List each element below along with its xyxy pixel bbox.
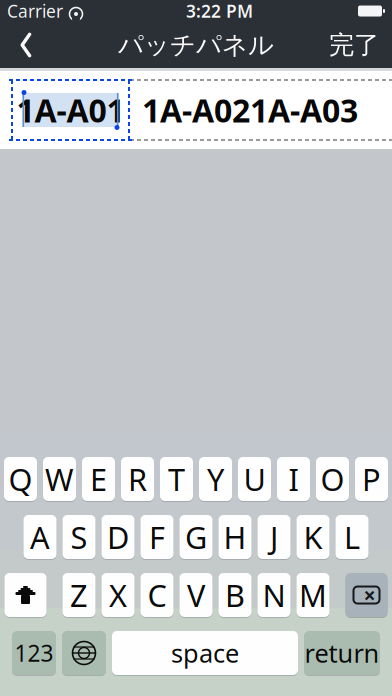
- button[interactable]: space: [112, 631, 298, 675]
- staticText: B: [225, 575, 245, 615]
- button[interactable]: Delete: [345, 573, 387, 617]
- button[interactable]: V: [179, 573, 212, 617]
- staticText: P: [362, 459, 381, 499]
- staticText: 3:22 PM: [186, 0, 253, 22]
- staticText: 1A-A02: [142, 89, 250, 131]
- staticText: V: [187, 575, 205, 615]
- staticText: space: [171, 636, 239, 670]
- staticText: C: [147, 575, 166, 615]
- button[interactable]: B: [218, 573, 251, 617]
- staticText: O: [320, 459, 344, 499]
- button[interactable]: K: [296, 515, 329, 559]
- button[interactable]: I: [277, 457, 310, 501]
- staticText: W: [45, 459, 74, 499]
- staticText: ×: [363, 581, 375, 609]
- button[interactable]: P: [355, 457, 388, 501]
- button[interactable]: G: [179, 515, 212, 559]
- staticText: D: [107, 517, 129, 557]
- staticText: X: [109, 575, 127, 615]
- button[interactable]: Z: [62, 573, 95, 617]
- button[interactable]: N: [257, 573, 290, 617]
- staticText: J: [270, 517, 278, 557]
- button[interactable]: W: [43, 457, 76, 501]
- button[interactable]: S: [62, 515, 95, 559]
- button[interactable]: Shift: [4, 573, 46, 617]
- button[interactable]: 完了: [315, 22, 392, 68]
- staticText: [63, 0, 68, 22]
- button[interactable]: Q: [4, 457, 37, 501]
- staticText: N: [262, 575, 285, 615]
- staticText: K: [303, 517, 322, 557]
- button[interactable]: M: [296, 573, 329, 617]
- button[interactable]: D: [101, 515, 134, 559]
- staticText: G: [185, 517, 207, 557]
- staticText: 1A-A01: [16, 89, 124, 131]
- button[interactable]: 1A-A02: [142, 79, 250, 141]
- staticText: M: [299, 575, 327, 615]
- button[interactable]: L: [335, 515, 368, 559]
- button[interactable]: R: [121, 457, 154, 501]
- staticText: Y: [207, 459, 224, 499]
- button[interactable]: C: [140, 573, 173, 617]
- staticText: Carrier: [7, 0, 63, 22]
- button[interactable]: Y: [199, 457, 232, 501]
- button[interactable]: Next keyboard: [62, 631, 106, 675]
- staticText: 123: [14, 638, 53, 668]
- staticText: H: [223, 517, 246, 557]
- staticText: 1A-A03: [250, 89, 358, 131]
- staticText: I: [288, 459, 298, 499]
- button[interactable]: H: [218, 515, 251, 559]
- button[interactable]: A: [23, 515, 56, 559]
- staticText: U: [243, 459, 265, 499]
- button[interactable]: 1A-A03: [250, 79, 358, 141]
- button[interactable]: F: [140, 515, 173, 559]
- button[interactable]: U: [238, 457, 271, 501]
- button[interactable]: 1A-A01: [11, 79, 130, 141]
- staticText: A: [30, 517, 50, 557]
- staticText: return: [304, 636, 379, 670]
- button[interactable]: Back: [0, 22, 53, 68]
- button[interactable]: X: [101, 573, 134, 617]
- staticText: F: [149, 517, 165, 557]
- staticText: Z: [70, 575, 88, 615]
- button[interactable]: J: [257, 515, 290, 559]
- staticText: Q: [8, 459, 32, 499]
- staticText: 完了: [329, 29, 379, 60]
- staticText: S: [70, 517, 87, 557]
- button[interactable]: O: [316, 457, 349, 501]
- staticText: E: [90, 459, 107, 499]
- staticText: R: [128, 459, 147, 499]
- button[interactable]: return: [304, 631, 380, 675]
- button[interactable]: T: [160, 457, 193, 501]
- button[interactable]: E: [82, 457, 115, 501]
- staticText: T: [168, 459, 185, 499]
- staticText: L: [344, 517, 360, 557]
- button[interactable]: 123: [12, 631, 56, 675]
- staticText: パッチパネル: [118, 29, 274, 60]
